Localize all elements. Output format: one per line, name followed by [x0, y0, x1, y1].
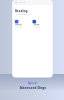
staticText: Item name	[32, 24, 39, 26]
staticText: Heading	[15, 9, 28, 13]
staticText: Item name	[15, 24, 22, 26]
staticText: Explore	[27, 81, 37, 85]
staticText: Short detail	[15, 26, 22, 28]
staticText: Tokens and Dings	[19, 86, 45, 90]
staticText: Supporting text line here	[15, 13, 31, 15]
staticText: Short detail	[32, 26, 39, 28]
staticText: appname	[18, 1, 25, 3]
